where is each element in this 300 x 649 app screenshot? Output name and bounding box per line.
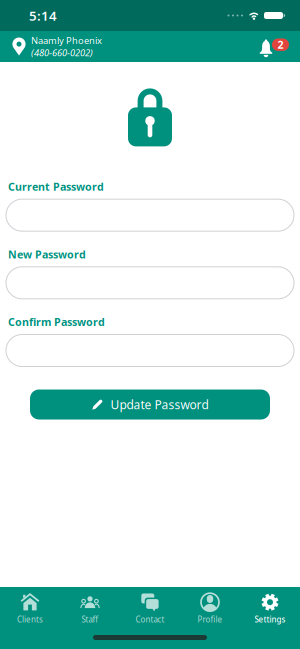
button[interactable]: Settings — [240, 591, 300, 627]
button[interactable]: Confirm Password — [6, 334, 294, 366]
staticText: Profile — [197, 614, 222, 625]
button[interactable]: Current Password — [6, 199, 294, 231]
button[interactable]: Contact — [120, 591, 180, 627]
staticText: (480-660-0202) — [31, 46, 93, 59]
staticText: 2 — [277, 38, 283, 52]
button[interactable]: Profile — [180, 591, 240, 627]
button[interactable]: Location — [0, 37, 26, 55]
staticText: 5:14 — [29, 7, 57, 24]
staticText: Staff — [81, 614, 98, 625]
staticText: Settings — [254, 614, 285, 625]
button[interactable]: Clients — [0, 591, 60, 627]
staticText: Naamly Phoenix — [31, 34, 102, 46]
staticText: Current Password — [8, 179, 104, 194]
staticText: Clients — [17, 614, 43, 625]
button[interactable]: New Password — [6, 267, 294, 299]
staticText: Confirm Password — [8, 315, 105, 329]
button[interactable]: Update Password — [30, 389, 270, 419]
button[interactable]: Staff — [60, 591, 120, 627]
staticText: New Password — [8, 247, 86, 261]
button[interactable]: Notifications — [253, 34, 300, 58]
staticText: Update Password — [110, 396, 208, 412]
staticText: Contact — [135, 614, 164, 625]
